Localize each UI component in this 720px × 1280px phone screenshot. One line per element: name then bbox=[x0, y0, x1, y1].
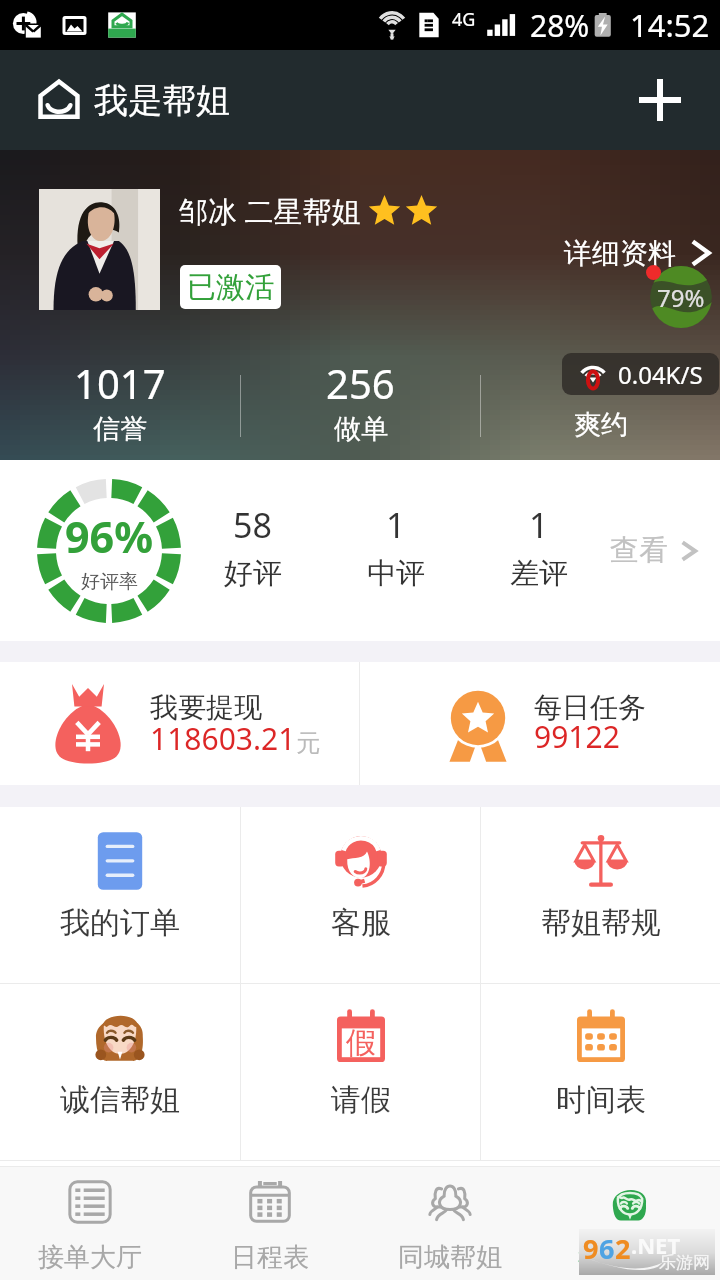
staticText: 1017 bbox=[74, 356, 166, 410]
staticText: 详细资料 bbox=[564, 236, 676, 271]
staticText: 帮姐帮规 bbox=[541, 904, 661, 942]
button[interactable]: 帮姐帮规 bbox=[481, 807, 720, 983]
staticText: 假 bbox=[346, 1024, 376, 1062]
button[interactable]: 查看 bbox=[610, 532, 706, 569]
staticText: 接单大厅 bbox=[38, 1241, 142, 1274]
staticText: 做单 bbox=[334, 412, 388, 446]
staticText: 日程表 bbox=[231, 1241, 309, 1274]
staticText: 邹冰 二星帮姐 bbox=[179, 191, 361, 231]
button[interactable]: 1 bbox=[467, 502, 610, 592]
button[interactable]: 时间表 bbox=[481, 984, 720, 1160]
button[interactable]: 1 bbox=[324, 502, 467, 592]
staticText: 1 bbox=[386, 502, 406, 548]
staticText: 中评 bbox=[367, 555, 425, 592]
button[interactable]: 我要提现 bbox=[0, 662, 359, 785]
staticText: 元 bbox=[296, 728, 320, 758]
staticText: 同城帮姐 bbox=[398, 1241, 502, 1274]
button[interactable]: 每日任务 bbox=[360, 662, 720, 785]
staticText: 118603.21 bbox=[150, 718, 296, 759]
staticText: 1 bbox=[529, 502, 549, 548]
staticText: 28% bbox=[530, 5, 590, 46]
button[interactable]: 接单大厅 bbox=[0, 1167, 180, 1280]
staticText: 诚信帮姐 bbox=[60, 1081, 180, 1119]
staticText: 0.04K/S bbox=[618, 358, 703, 391]
button[interactable]: 客服 bbox=[241, 807, 480, 983]
staticText: 差评 bbox=[510, 555, 568, 592]
staticText: 9 bbox=[583, 1230, 599, 1267]
staticText: 2 bbox=[615, 1230, 631, 1267]
button[interactable]: 详细资料 bbox=[564, 235, 718, 271]
staticText: 我是帮姐 bbox=[578, 1241, 682, 1274]
staticText: 256 bbox=[326, 356, 395, 410]
button[interactable]: 我的订单 bbox=[0, 807, 240, 983]
staticText: 我是帮姐 bbox=[94, 79, 230, 122]
staticText: 6 bbox=[599, 1230, 615, 1267]
staticText: 每日任务 bbox=[534, 690, 646, 725]
staticText: 96% bbox=[65, 507, 153, 566]
staticText: 99122 bbox=[534, 716, 620, 757]
staticText: .NET bbox=[631, 1230, 681, 1260]
staticText: 好评率 bbox=[81, 570, 138, 594]
button[interactable]: 已激活 bbox=[180, 265, 281, 309]
button[interactable]: 同城帮姐 bbox=[360, 1167, 540, 1280]
staticText: 信誉 bbox=[93, 412, 147, 446]
button[interactable]: 诚信帮姐 bbox=[0, 984, 240, 1160]
button[interactable]: 58 bbox=[181, 502, 324, 592]
button[interactable]: 假 bbox=[241, 984, 480, 1160]
staticText: 客服 bbox=[331, 904, 391, 942]
button[interactable]: Add bbox=[630, 70, 690, 130]
button[interactable]: 日程表 bbox=[180, 1167, 360, 1280]
button[interactable]: 1017 bbox=[0, 352, 240, 460]
staticText: 我要提现 bbox=[150, 690, 262, 725]
staticText: 爽约 bbox=[574, 408, 628, 442]
button[interactable]: 我是帮姐 bbox=[540, 1167, 720, 1280]
staticText: 请假 bbox=[331, 1081, 391, 1119]
staticText: 58 bbox=[233, 502, 272, 548]
staticText: 79% bbox=[657, 281, 705, 314]
staticText: 14:52 bbox=[630, 4, 710, 46]
staticText: 我的订单 bbox=[60, 904, 180, 942]
staticText: 时间表 bbox=[556, 1081, 646, 1119]
staticText: 4G bbox=[452, 7, 476, 32]
button[interactable]: 爽约 bbox=[481, 352, 720, 460]
staticText: 查看 bbox=[610, 532, 668, 569]
button[interactable]: 256 bbox=[241, 352, 480, 460]
staticText: 已激活 bbox=[187, 269, 274, 306]
staticText: 好评 bbox=[224, 555, 282, 592]
staticText: 乐游网 bbox=[659, 1252, 710, 1273]
